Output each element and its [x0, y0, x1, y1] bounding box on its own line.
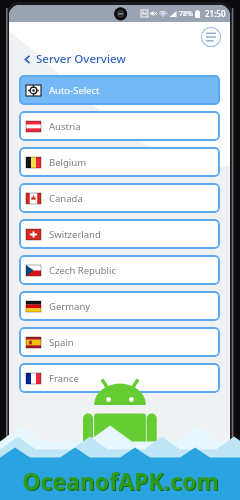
- staticText: Czech Republic: [49, 264, 117, 277]
- staticText: Canada: [49, 192, 83, 205]
- button[interactable]: Switzerland: [19, 219, 220, 249]
- button[interactable]: Auto-Select: [19, 75, 220, 105]
- staticText: OceanofAPK.com: [23, 466, 220, 497]
- staticText: 21:50: [205, 8, 226, 19]
- button[interactable]: Canada: [19, 183, 220, 213]
- button[interactable]: France: [19, 363, 220, 393]
- staticText: Spain: [49, 336, 74, 349]
- staticText: France: [49, 372, 79, 385]
- staticText: Switzerland: [49, 228, 101, 241]
- staticText: Austria: [49, 120, 81, 133]
- button[interactable]: Austria: [19, 111, 220, 141]
- button[interactable]: Belgium: [19, 147, 220, 177]
- staticText: Server Overview: [36, 51, 126, 67]
- staticText: Belgium: [49, 156, 87, 169]
- button[interactable]: Czech Republic: [19, 255, 220, 285]
- staticText: Germany: [49, 300, 91, 313]
- staticText: Auto-Select: [49, 84, 100, 97]
- button[interactable]: Germany: [19, 291, 220, 321]
- button[interactable]: Server Overview: [23, 48, 230, 70]
- button[interactable]: Spain: [19, 327, 220, 357]
- staticText: OceanofAPK.com: [22, 465, 219, 496]
- button[interactable]: Menu: [200, 26, 222, 48]
- staticText: 78%: [179, 9, 193, 19]
